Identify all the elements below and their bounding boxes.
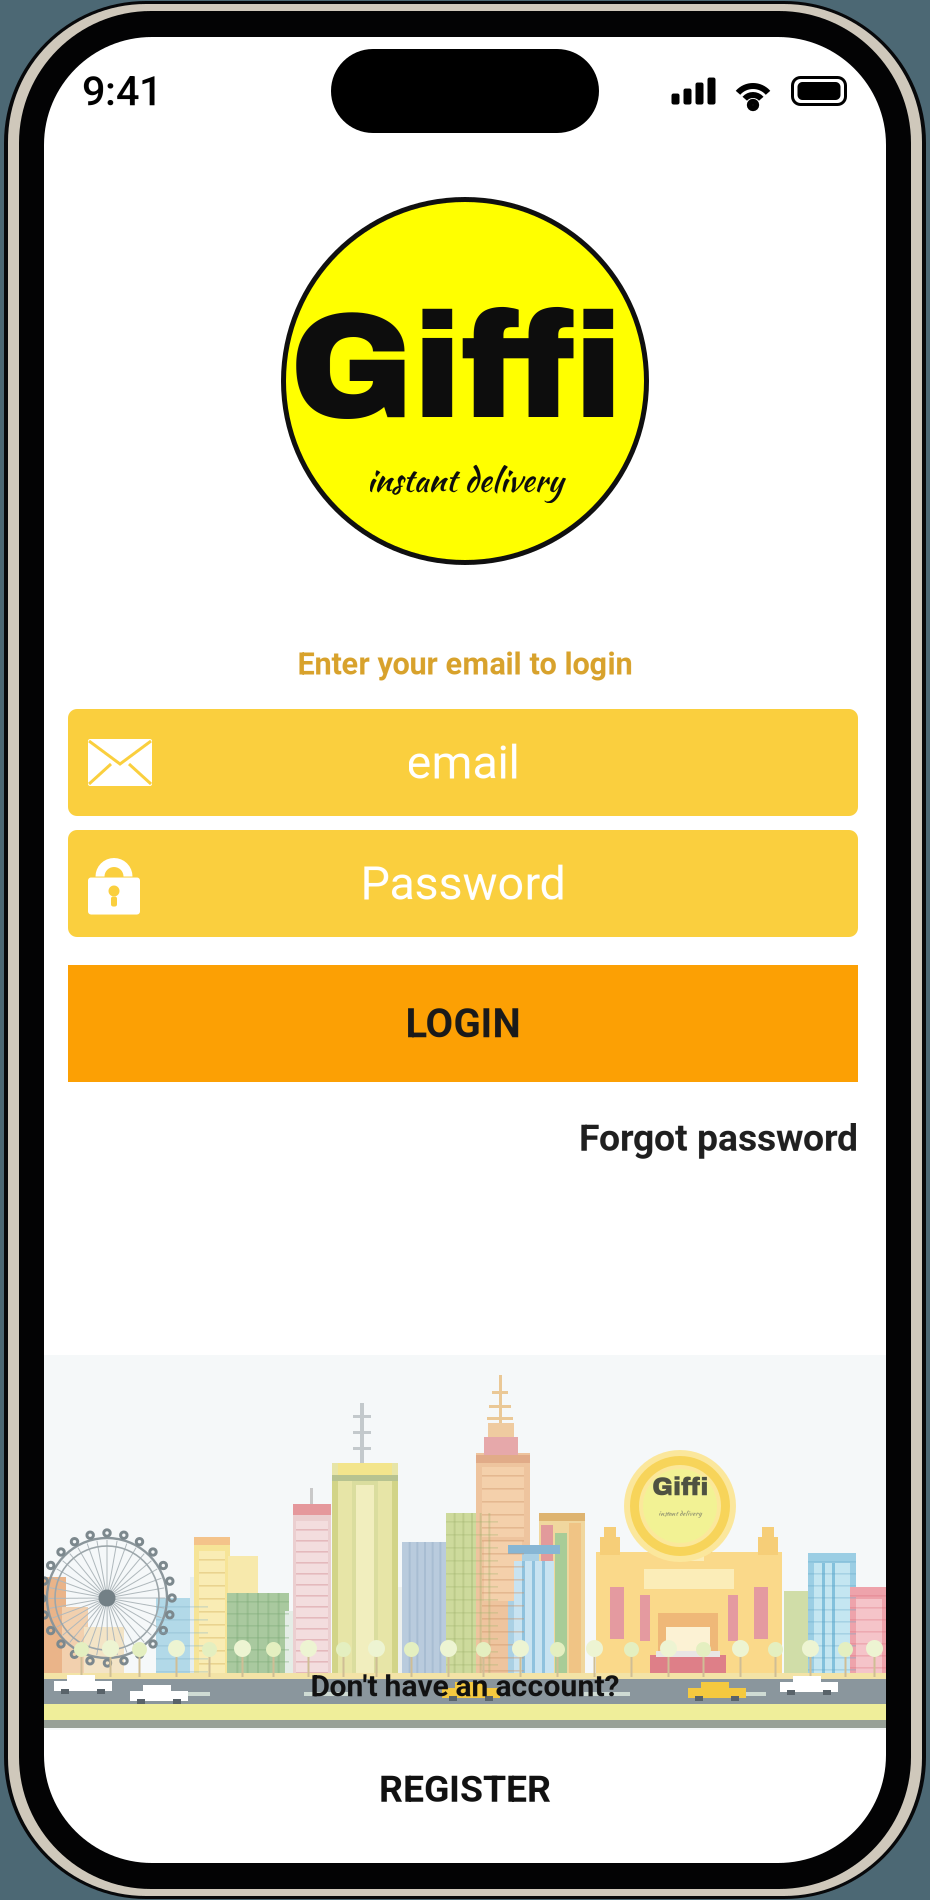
staticText: Don't have an account? <box>310 1668 619 1704</box>
button[interactable]: LOGIN <box>68 965 858 1082</box>
staticText: instant delivery <box>658 1509 701 1518</box>
staticText: Giffi <box>289 286 622 448</box>
button[interactable]: Forgot password <box>579 1111 858 1165</box>
staticText: REGISTER <box>379 1767 551 1811</box>
staticText: instant delivery <box>366 456 563 503</box>
button[interactable]: Password <box>68 830 858 937</box>
staticText: 9:41 <box>82 67 162 115</box>
staticText: LOGIN <box>405 1000 520 1047</box>
staticText: Forgot password <box>579 1116 858 1160</box>
staticText: Giffi <box>652 1473 708 1501</box>
staticText: Enter your email to login <box>297 646 632 682</box>
staticText: Password <box>360 856 565 911</box>
button[interactable]: email <box>68 709 858 816</box>
button[interactable]: REGISTER <box>44 1762 886 1816</box>
staticText: email <box>406 735 519 790</box>
